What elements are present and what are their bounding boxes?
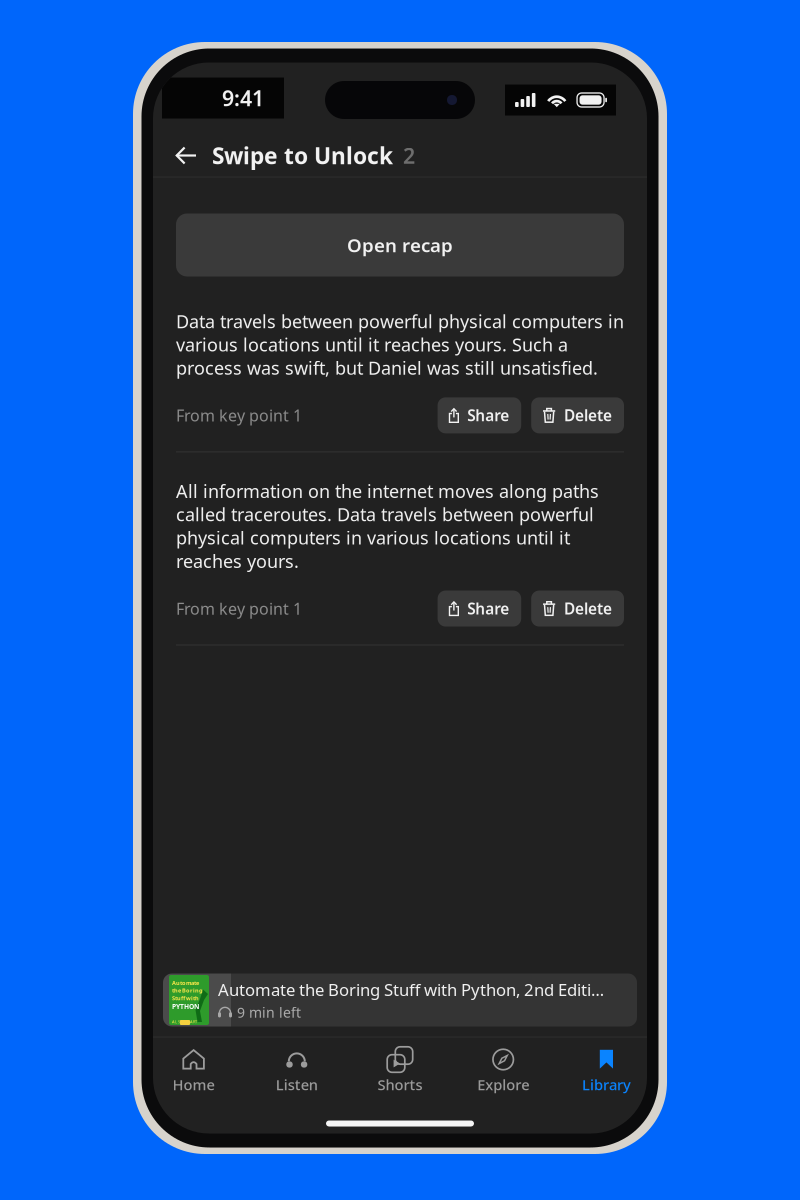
staticText: Automate [172,979,199,987]
staticText: AL SWEIGART [172,1019,197,1024]
button[interactable]: Delete [531,590,624,626]
button[interactable]: Library [555,1036,658,1097]
button[interactable]: Listen [245,1036,348,1097]
button[interactable]: Share [438,397,521,433]
staticText: Stuff with [172,994,199,1002]
button[interactable]: Delete [531,397,624,433]
staticText: Shorts [377,1074,422,1094]
staticText: Home [173,1074,215,1094]
button[interactable]: Shorts [348,1036,452,1097]
button[interactable]: Explore [452,1036,555,1097]
staticText: Delete [564,598,612,619]
staticText: Open recap [347,232,453,258]
staticText: 9 min left [237,1003,301,1022]
button[interactable]: Open recap [176,213,624,276]
staticText: PYTHON [172,1002,199,1011]
staticText: 9:41 [222,83,264,113]
button[interactable]: Back [169,133,203,177]
staticText: Swipe to Unlock [212,140,393,171]
staticText: Delete [564,405,612,426]
staticText: Explore [477,1074,529,1094]
staticText: From key point 1 [176,598,302,619]
staticText: Listen [276,1074,318,1094]
staticText: Automate the Boring Stuff with Python, 2… [218,978,604,1001]
staticText: From key point 1 [176,404,302,426]
staticText: All information on the internet moves al… [176,479,599,573]
button[interactable]: Automate [163,973,637,1026]
staticText: Share [467,598,509,619]
staticText: the Boring [172,987,203,994]
staticText: Data travels between powerful physical c… [176,309,624,379]
button[interactable]: Home [142,1036,245,1097]
staticText: Share [467,405,509,426]
staticText: 2 [403,141,415,170]
staticText: Library [582,1074,631,1094]
button[interactable]: Share [438,590,521,626]
